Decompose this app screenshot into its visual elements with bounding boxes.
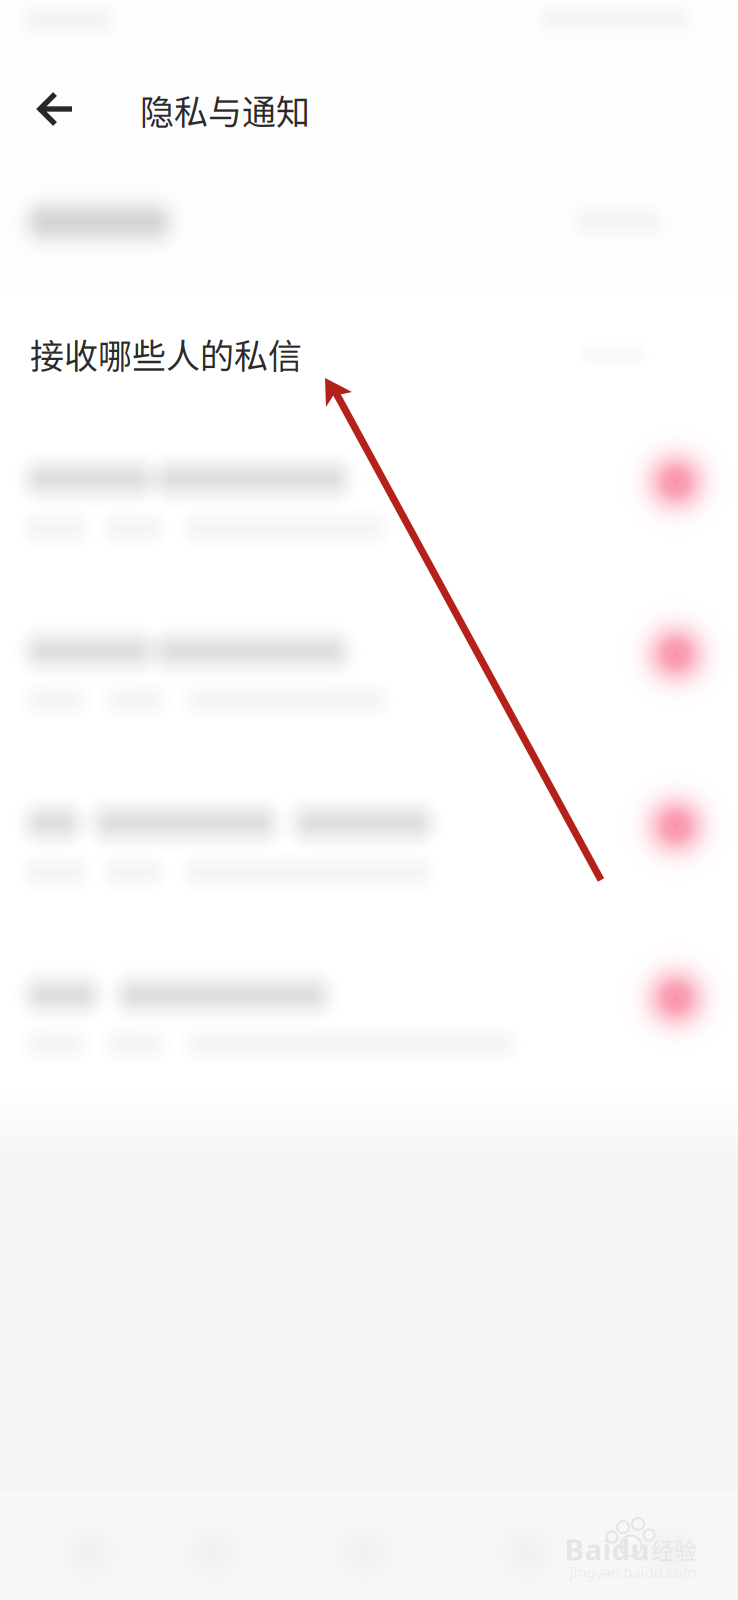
- staticText: 经验: [651, 1533, 697, 1565]
- button[interactable]: 返回: [8, 59, 106, 161]
- button[interactable]: 首页: [0, 0, 738, 1600]
- button[interactable]: 消息: [0, 0, 738, 1600]
- button[interactable]: [0, 406, 738, 578]
- button[interactable]: 发布: [0, 0, 738, 1600]
- button[interactable]: 我: [0, 0, 738, 1600]
- staticText: 隐私与通知: [140, 85, 310, 135]
- button[interactable]: [0, 578, 738, 750]
- button[interactable]: 视频: [0, 0, 738, 1600]
- staticText: 接收哪些人的私信: [30, 329, 302, 379]
- staticText: jingyan.baidu.com: [569, 1562, 696, 1582]
- button[interactable]: [0, 750, 738, 922]
- button[interactable]: [0, 175, 738, 269]
- button[interactable]: [0, 922, 738, 1094]
- staticText: Baidu: [564, 1529, 649, 1568]
